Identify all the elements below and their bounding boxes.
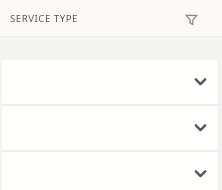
button[interactable] (2, 152, 218, 190)
staticText: SERVICE TYPE (10, 12, 78, 25)
button[interactable] (2, 60, 218, 104)
button[interactable] (2, 106, 218, 150)
button[interactable]: Filter (178, 6, 204, 32)
